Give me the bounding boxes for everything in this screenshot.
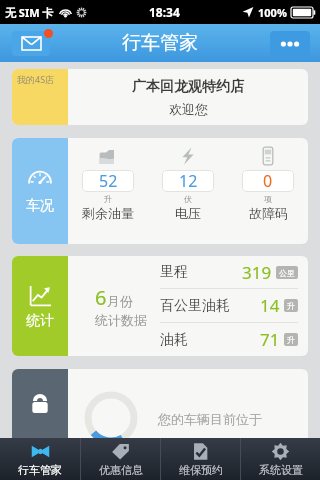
staticText: 统计数据 [95, 312, 147, 328]
staticText: 6 [95, 284, 107, 311]
staticText: 电压 [175, 205, 201, 221]
staticText: 车况 [26, 197, 54, 215]
staticText: 故障码 [249, 205, 288, 221]
staticText: 319 [242, 261, 272, 284]
button[interactable]: Messages [12, 31, 50, 56]
staticText: 您的车辆目前位于 [158, 411, 262, 427]
staticText: 系统设置 [259, 463, 303, 477]
staticText: 升 [287, 335, 295, 345]
staticText: 统计 [26, 312, 54, 330]
staticText: 油耗 [160, 331, 188, 349]
staticText: 伏 [184, 194, 192, 204]
button[interactable]: 您的车辆目前位于 [12, 369, 308, 469]
button[interactable]: 0 [228, 138, 308, 244]
staticText: 项 [264, 194, 272, 204]
button[interactable]: 车况 [12, 138, 308, 244]
button[interactable]: 12 [148, 138, 228, 244]
staticText: 12 [179, 170, 198, 192]
staticText: 100% [258, 5, 287, 20]
staticText: 18:34 [149, 4, 180, 20]
button[interactable]: 我的4S店 [12, 69, 308, 125]
button[interactable]: 行车管家 [0, 438, 80, 480]
staticText: 优惠信息 [99, 463, 143, 477]
staticText: 0 [263, 170, 273, 192]
button[interactable]: 里程 [160, 256, 298, 288]
staticText: 行车管家 [18, 463, 62, 477]
button[interactable]: More options [270, 31, 310, 56]
staticText: 欢迎您 [169, 101, 208, 117]
staticText: 71 [260, 328, 280, 351]
button[interactable]: 优惠信息 [81, 438, 160, 480]
staticText: 升 [104, 194, 112, 204]
staticText: 百公里油耗 [160, 297, 230, 315]
button[interactable]: 油耗 [160, 323, 298, 356]
button[interactable]: 维保预约 [161, 438, 240, 480]
staticText: 行车管家 [122, 31, 198, 55]
button[interactable]: 统计 [12, 256, 308, 356]
staticText: 公里 [279, 268, 295, 278]
staticText: 52 [99, 170, 118, 192]
staticText: 升 [287, 301, 295, 311]
staticText: 广本回龙观特约店 [132, 78, 244, 96]
staticText: 里程 [160, 263, 188, 281]
staticText: 月份 [107, 293, 133, 309]
staticText: 剩余油量 [82, 205, 134, 221]
button[interactable]: 百公里油耗 [160, 289, 298, 322]
staticText: 14 [260, 294, 280, 317]
button[interactable]: 系统设置 [241, 438, 320, 480]
staticText: 无 SIM 卡 [5, 5, 54, 20]
staticText: 维保预约 [179, 463, 223, 477]
button[interactable]: 52 [68, 138, 148, 244]
staticText: 我的4S店 [17, 73, 55, 85]
